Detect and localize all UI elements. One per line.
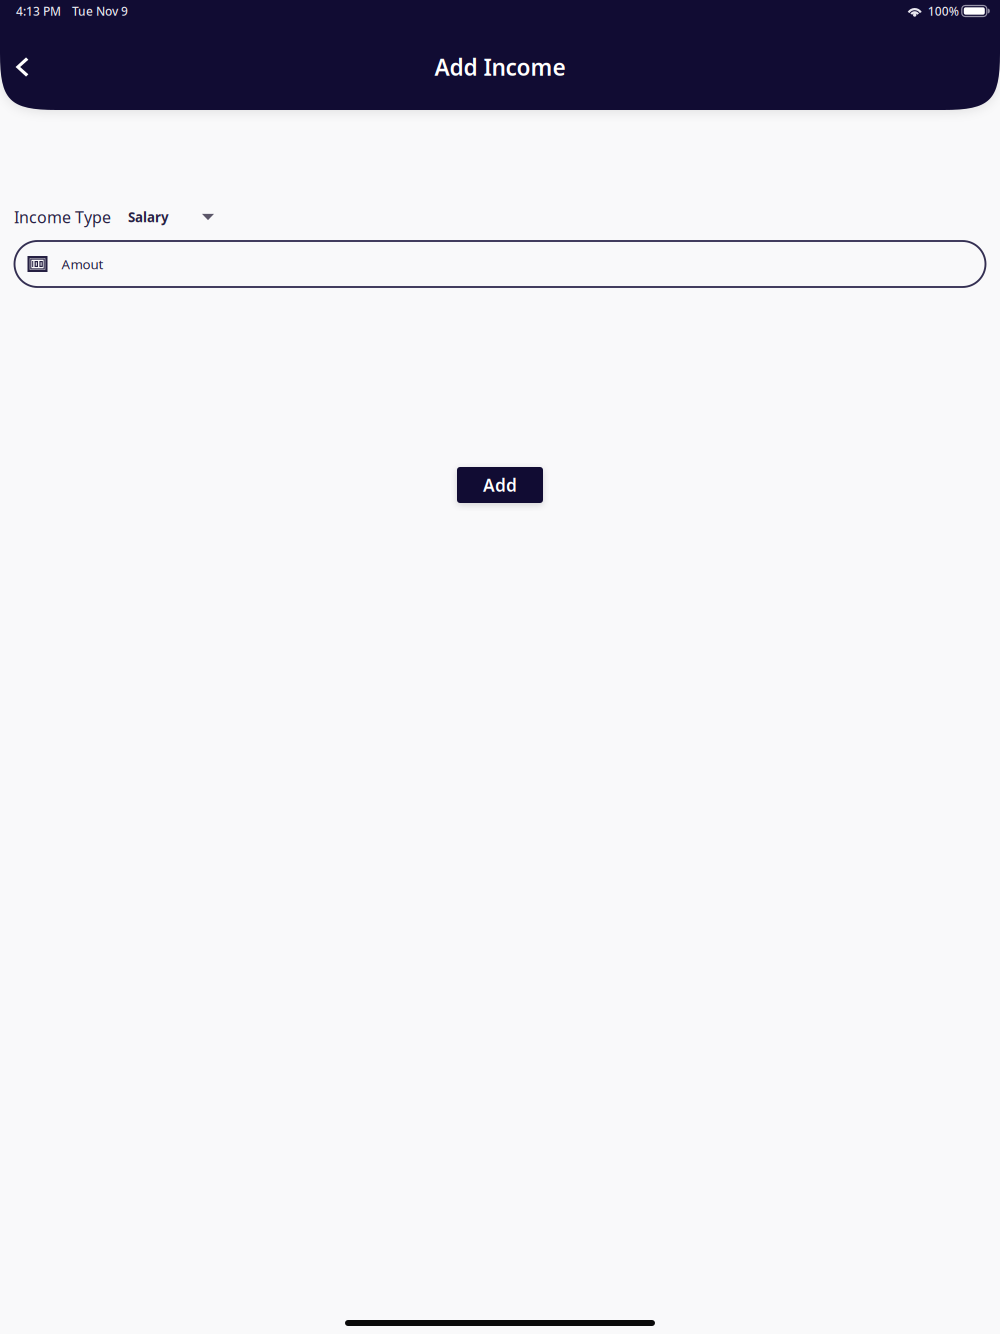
staticText: Tue Nov 9: [72, 3, 128, 19]
staticText: 100%: [928, 3, 959, 19]
button[interactable]: Back: [0, 44, 45, 90]
staticText: Amout: [61, 255, 103, 273]
staticText: Income Type: [14, 206, 111, 228]
button[interactable]: Add: [457, 467, 543, 503]
staticText: 4:13 PM: [16, 3, 61, 19]
staticText: Add Income: [434, 52, 565, 82]
button[interactable]: Amout: [14, 241, 985, 287]
staticText: Add: [483, 473, 517, 496]
staticText: Salary: [128, 208, 169, 226]
button[interactable]: Salary: [111, 202, 223, 232]
